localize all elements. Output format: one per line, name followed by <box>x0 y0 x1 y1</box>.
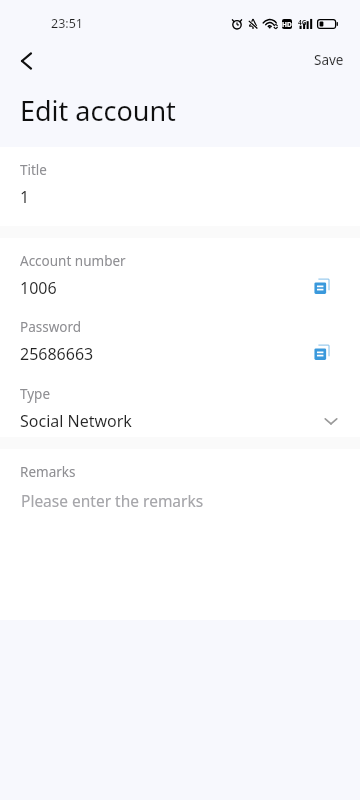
staticText: Social Network <box>20 410 132 432</box>
staticText: 1 <box>20 186 30 208</box>
staticText: Remarks <box>20 463 76 481</box>
button[interactable]: Back <box>4 38 50 84</box>
staticText: 23:51 <box>51 15 83 32</box>
staticText: Please enter the remarks <box>21 490 204 511</box>
button[interactable]: Title <box>0 147 360 226</box>
staticText: 1006 <box>20 277 57 299</box>
staticText: Title <box>20 161 47 179</box>
staticText: 25686663 <box>20 343 94 365</box>
button[interactable]: Copy <box>313 277 331 295</box>
button[interactable]: Account number <box>0 238 360 304</box>
staticText: Save <box>314 51 344 69</box>
staticText: Type <box>20 385 51 403</box>
button[interactable]: Type <box>0 371 360 437</box>
staticText: Password <box>20 318 82 336</box>
button[interactable]: Select type <box>322 412 340 430</box>
staticText: HD <box>282 20 292 29</box>
staticText: Edit account <box>20 92 176 129</box>
button[interactable]: Copy <box>313 343 331 361</box>
button[interactable]: Save <box>298 38 360 78</box>
button[interactable]: Password <box>0 304 360 371</box>
staticText: 4G <box>298 18 307 27</box>
staticText: Account number <box>20 252 126 270</box>
button[interactable]: Remarks <box>0 449 360 620</box>
